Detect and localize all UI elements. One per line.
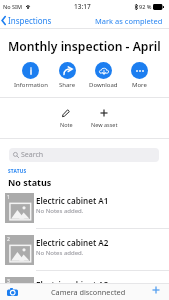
button[interactable]: 2 <box>0 229 169 270</box>
button[interactable]: Download <box>85 62 121 89</box>
staticText: Information <box>14 81 48 89</box>
staticText: 1 <box>7 194 10 201</box>
button[interactable]: Inspections <box>0 13 56 28</box>
staticText: Note <box>60 121 73 128</box>
staticText: New asset <box>91 121 118 128</box>
staticText: 2 <box>7 236 10 243</box>
staticText: No status <box>8 176 52 187</box>
button[interactable]: Note <box>47 109 85 128</box>
button[interactable]: Camera <box>6 285 19 299</box>
staticText: Search <box>21 150 44 160</box>
staticText: Monthly inspection - April <box>8 38 161 55</box>
staticText: Mark as completed <box>95 16 163 26</box>
button[interactable]: Share <box>49 62 85 89</box>
staticText: Share <box>59 81 76 89</box>
staticText: 13:17 <box>74 2 91 11</box>
button[interactable]: Add <box>149 285 163 299</box>
staticText: STATUS <box>8 168 27 175</box>
staticText: Download <box>89 81 118 89</box>
staticText: 3 <box>7 278 10 283</box>
staticText: No Notes added. <box>36 249 84 257</box>
staticText: Camera disconnected <box>51 287 126 297</box>
staticText: 92 % <box>139 3 152 10</box>
button[interactable]: More <box>121 62 157 89</box>
staticText: No Notes added. <box>36 207 84 215</box>
staticText: No SIM <box>3 3 23 10</box>
button[interactable]: 1 <box>0 187 169 228</box>
button[interactable]: New asset <box>85 109 123 128</box>
staticText: Inspections <box>8 15 52 26</box>
button[interactable]: Search <box>9 148 159 162</box>
staticText: Electric cabinet A2 <box>36 237 109 248</box>
button[interactable]: Information <box>12 62 49 89</box>
button[interactable]: Mark as completed <box>91 13 169 28</box>
button[interactable]: 3 <box>0 271 169 283</box>
staticText: More <box>132 81 147 89</box>
staticText: Electric cabinet A3 <box>36 279 109 283</box>
staticText: Electric cabinet A1 <box>36 195 109 206</box>
